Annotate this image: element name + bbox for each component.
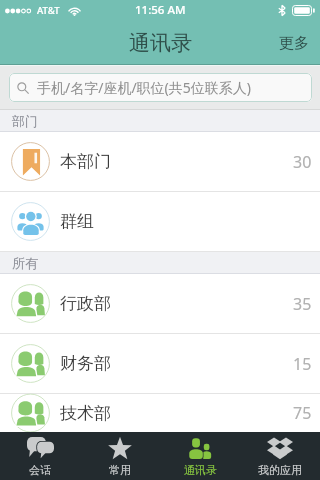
button[interactable]: Favorites	[80, 432, 160, 480]
staticText: 35	[293, 293, 312, 315]
staticText: 手机/名字/座机/职位(共5位联系人)	[37, 78, 252, 97]
staticText: AT&T	[37, 4, 60, 17]
button[interactable]: 财务部	[0, 334, 320, 393]
staticText: 30	[293, 151, 312, 173]
staticText: 技术部	[60, 403, 111, 424]
button[interactable]: 技术部	[0, 394, 320, 432]
staticText: 通讯录	[129, 30, 192, 56]
staticText: 本部门	[60, 151, 111, 172]
button[interactable]: Contacts	[160, 432, 240, 480]
button[interactable]: 群组	[0, 192, 320, 251]
button[interactable]: 本部门	[0, 132, 320, 191]
staticText: 所有	[12, 255, 38, 271]
staticText: 15	[293, 353, 312, 375]
staticText: 我的应用	[258, 463, 302, 477]
staticText: 常用	[109, 463, 131, 477]
staticText: 财务部	[60, 353, 111, 374]
staticText: 行政部	[60, 293, 111, 314]
button[interactable]: 手机/名字/座机/职位(共5位联系人)	[9, 73, 312, 102]
button[interactable]: My apps	[240, 432, 320, 480]
staticText: 通讯录	[184, 463, 217, 477]
staticText: 会话	[29, 463, 51, 477]
button[interactable]: Chat	[0, 432, 80, 480]
staticText: 群组	[60, 211, 94, 232]
button[interactable]: 行政部	[0, 274, 320, 333]
staticText: 11:56 AM	[135, 2, 186, 18]
button[interactable]: 更多	[265, 22, 320, 63]
staticText: 部门	[12, 113, 38, 129]
staticText: 更多	[279, 34, 309, 53]
staticText: 75	[293, 402, 312, 424]
